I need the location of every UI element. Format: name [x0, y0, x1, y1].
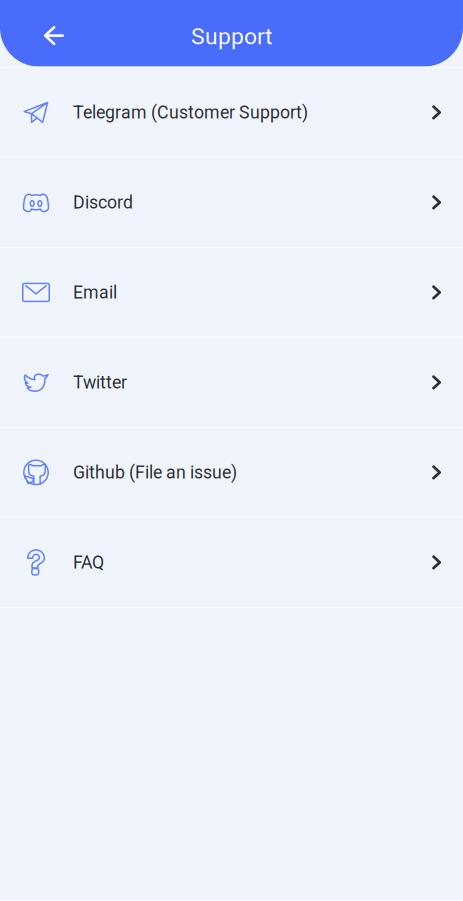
button[interactable]: Telegram (Customer Support): [0, 68, 463, 157]
staticText: Twitter: [73, 372, 127, 393]
staticText: Telegram (Customer Support): [73, 102, 308, 123]
button[interactable]: Discord: [0, 158, 463, 247]
button[interactable]: Email: [0, 248, 463, 337]
button[interactable]: FAQ: [0, 518, 463, 607]
button[interactable]: Back: [0, 0, 81, 66]
staticText: Github (File an issue): [73, 462, 237, 483]
staticText: Support: [191, 23, 272, 50]
button[interactable]: Github (File an issue): [0, 428, 463, 517]
staticText: Email: [73, 282, 117, 303]
button[interactable]: Twitter: [0, 338, 463, 427]
staticText: FAQ: [73, 552, 104, 573]
staticText: Discord: [73, 192, 133, 213]
